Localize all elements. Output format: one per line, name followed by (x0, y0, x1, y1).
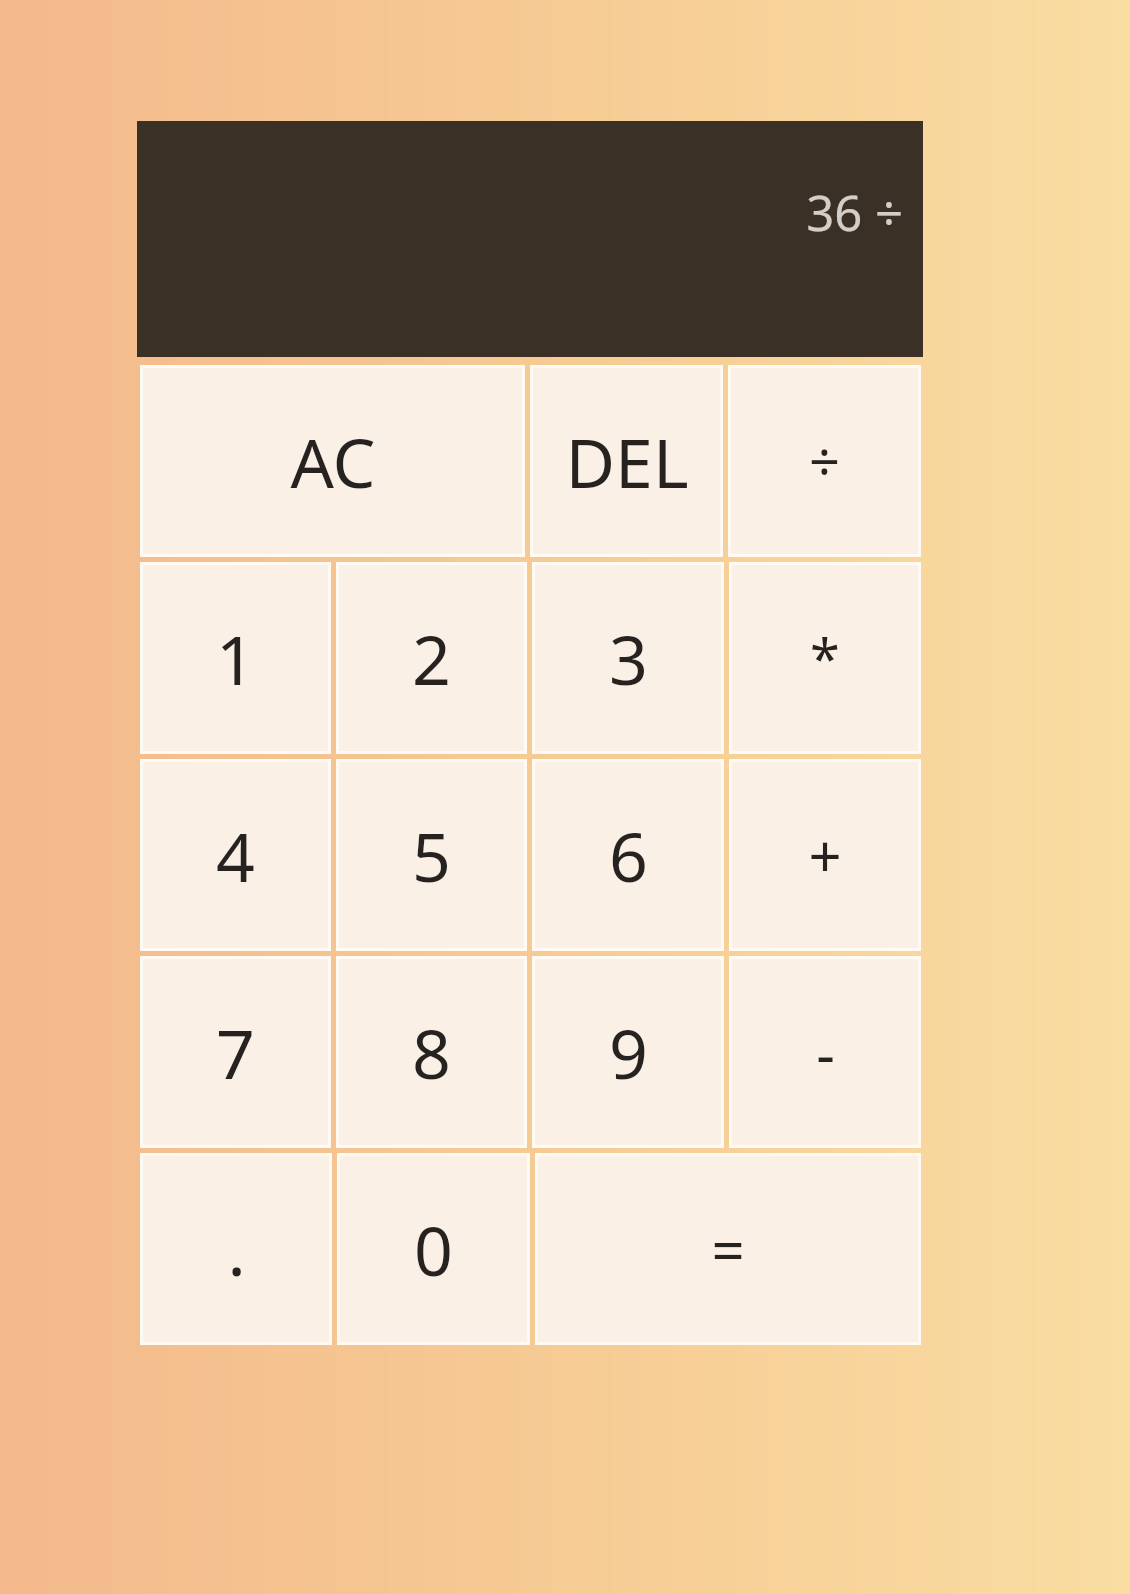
staticText: * (810, 621, 840, 695)
button[interactable]: 0 (337, 1153, 530, 1345)
staticText: 36 ÷ (806, 179, 903, 246)
staticText: . (227, 1203, 246, 1296)
button[interactable]: 1 (140, 562, 331, 754)
staticText: + (808, 816, 842, 895)
staticText: - (816, 1013, 835, 1092)
staticText: 1 (216, 612, 255, 705)
button[interactable]: = (535, 1153, 921, 1345)
button[interactable]: ÷ (728, 365, 921, 557)
button[interactable]: 3 (532, 562, 724, 754)
staticText: 6 (609, 809, 648, 902)
staticText: 4 (216, 809, 255, 902)
button[interactable]: AC (140, 365, 525, 557)
staticText: ÷ (809, 424, 840, 498)
button[interactable]: . (140, 1153, 332, 1345)
staticText: 0 (414, 1203, 453, 1296)
staticText: 2 (412, 612, 451, 705)
button[interactable]: 7 (140, 956, 331, 1148)
button[interactable]: 6 (532, 759, 724, 951)
staticText: 8 (412, 1006, 451, 1099)
staticText: 3 (609, 612, 648, 705)
staticText: 9 (609, 1006, 648, 1099)
button[interactable]: + (729, 759, 921, 951)
staticText: = (711, 1210, 745, 1289)
staticText: 7 (216, 1006, 255, 1099)
button[interactable]: 9 (532, 956, 724, 1148)
button[interactable]: 5 (336, 759, 527, 951)
staticText: DEL (565, 415, 689, 508)
button[interactable]: 4 (140, 759, 331, 951)
button[interactable]: - (729, 956, 921, 1148)
button[interactable]: DEL (530, 365, 723, 557)
button[interactable]: 8 (336, 956, 527, 1148)
button[interactable]: 2 (336, 562, 527, 754)
staticText: AC (290, 415, 376, 508)
staticText: 5 (412, 809, 451, 902)
button[interactable]: * (729, 562, 921, 754)
